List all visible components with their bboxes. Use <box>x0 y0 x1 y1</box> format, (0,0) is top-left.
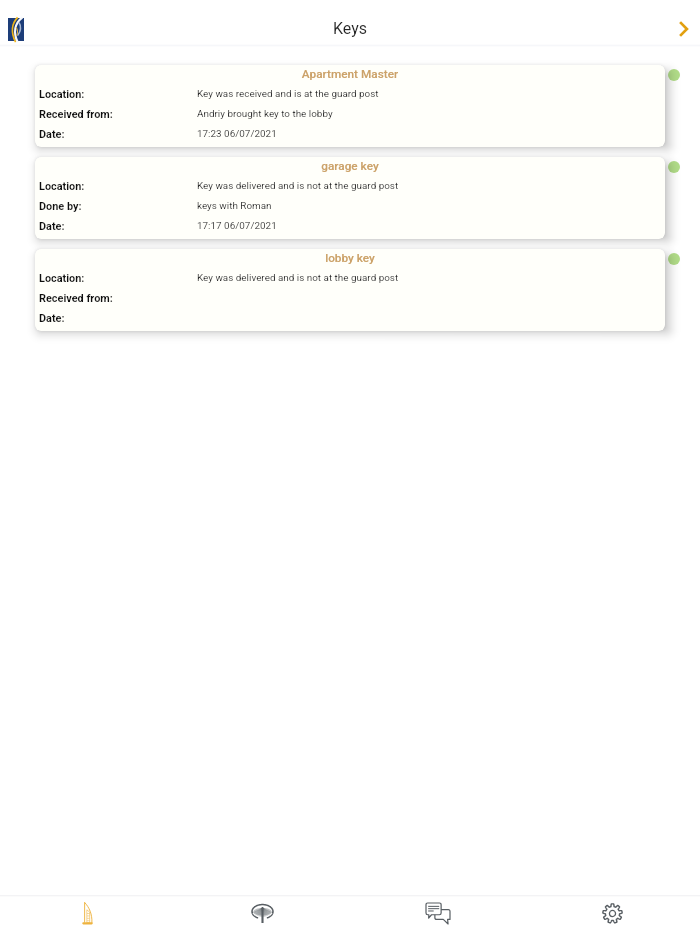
staticText: Location: <box>39 272 197 285</box>
staticText: Done by: <box>39 200 197 213</box>
staticText: Keys <box>333 19 368 38</box>
staticText: 17:17 06/07/2021 <box>197 220 277 232</box>
staticText: 17:23 06/07/2021 <box>197 128 277 140</box>
staticText: Received from: <box>39 108 197 121</box>
staticText: Received from: <box>39 292 197 305</box>
staticText: Date: <box>39 312 197 325</box>
staticText: garage key <box>35 159 665 173</box>
button[interactable]: Messages <box>350 895 525 934</box>
staticText: Key was received and is at the guard pos… <box>197 88 379 100</box>
staticText: Location: <box>39 180 197 193</box>
staticText: Apartment Master <box>35 67 665 81</box>
staticText: Key was delivered and is not at the guar… <box>197 180 399 192</box>
button[interactable]: Apartment Master <box>35 65 665 147</box>
staticText: Date: <box>39 128 197 141</box>
staticText: Key was delivered and is not at the guar… <box>197 272 399 284</box>
staticText: Location: <box>39 88 197 101</box>
button[interactable]: lobby key <box>35 249 665 331</box>
button[interactable]: Home <box>0 895 175 934</box>
staticText: keys with Roman <box>197 200 272 212</box>
button[interactable]: garage key <box>35 157 665 239</box>
staticText: lobby key <box>35 251 665 265</box>
button[interactable]: Settings <box>525 895 700 934</box>
button[interactable]: Next <box>673 19 693 39</box>
staticText: Date: <box>39 220 197 233</box>
staticText: Andriy brought key to the lobby <box>197 108 333 120</box>
button[interactable]: Menu <box>8 18 24 41</box>
button[interactable]: Services <box>175 895 350 934</box>
